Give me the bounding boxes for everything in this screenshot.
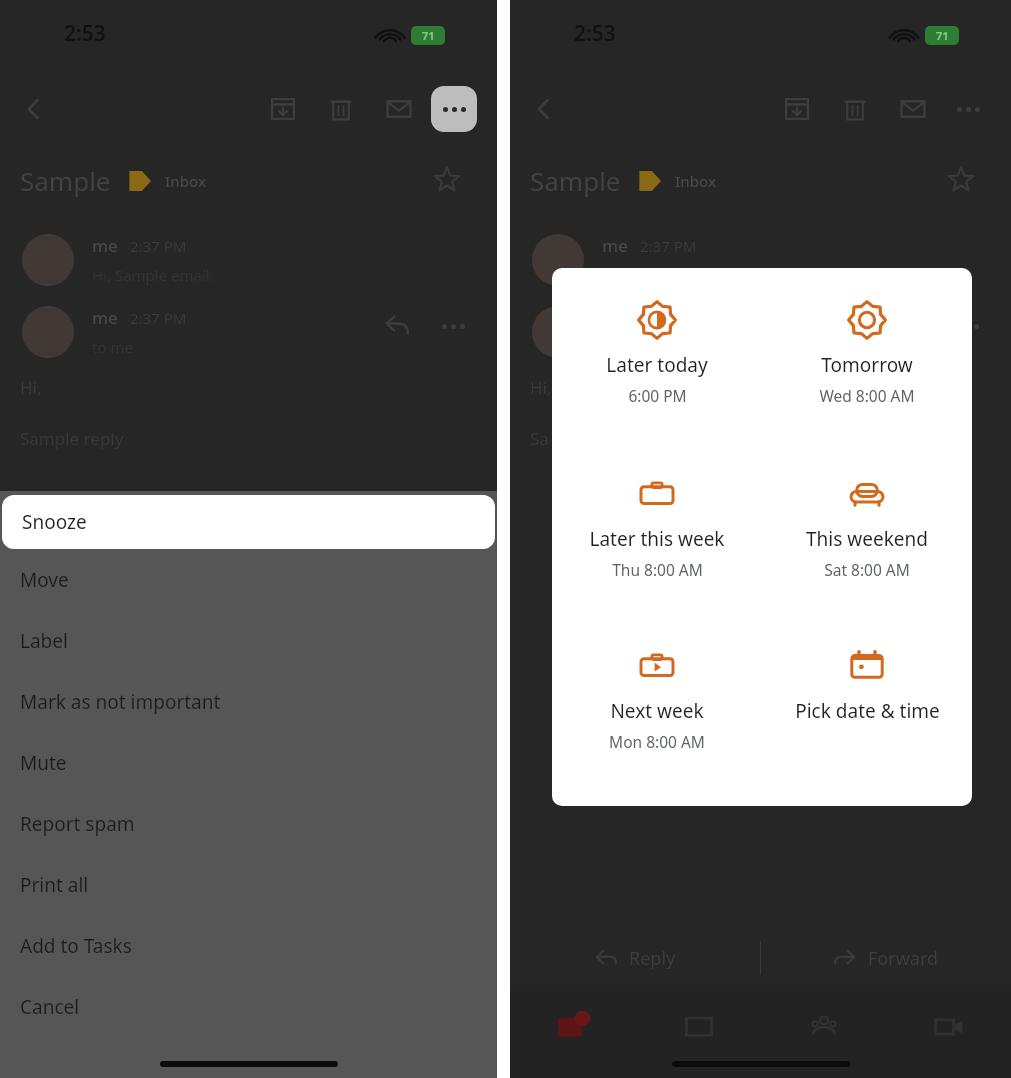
button[interactable]: Tomorrow xyxy=(762,296,972,410)
button[interactable]: Star xyxy=(427,160,467,200)
staticText: Move xyxy=(20,567,69,593)
button[interactable]: Print all xyxy=(0,854,497,915)
button[interactable]: Mark as not important xyxy=(0,671,497,732)
staticText: Later this week xyxy=(589,526,725,552)
staticText: Inbox xyxy=(165,171,207,191)
staticText: 2:53 xyxy=(574,19,616,48)
button[interactable]: Back xyxy=(520,85,568,133)
button[interactable]: Mark unread xyxy=(891,87,935,131)
staticText: Mark as not important xyxy=(20,689,221,715)
staticText: Cancel xyxy=(20,994,80,1020)
button[interactable]: Snooze xyxy=(2,495,495,549)
button[interactable]: Delete xyxy=(833,87,877,131)
button[interactable]: Back xyxy=(10,85,58,133)
staticText: 2:37 PM xyxy=(130,236,187,256)
button[interactable]: Label xyxy=(0,610,497,671)
button[interactable]: More xyxy=(433,306,473,346)
button[interactable]: Mail xyxy=(510,990,636,1078)
button[interactable]: Chat xyxy=(636,990,761,1078)
staticText: Snooze xyxy=(22,509,87,535)
staticText: 71 xyxy=(936,28,949,43)
button[interactable]: Archive xyxy=(261,87,305,131)
staticText: Sample xyxy=(530,163,621,198)
button[interactable]: More options xyxy=(431,86,477,132)
staticText: Tomorrow xyxy=(821,352,913,378)
staticText: Sample reply xyxy=(20,427,124,450)
staticText: me xyxy=(92,306,118,329)
button[interactable]: Spaces xyxy=(761,990,886,1078)
button[interactable]: Star xyxy=(941,160,981,200)
staticText: 71 xyxy=(422,28,435,43)
button[interactable]: Later this week xyxy=(552,470,762,584)
staticText: Inbox xyxy=(675,171,717,191)
staticText: This weekend xyxy=(806,526,928,552)
button[interactable]: Move xyxy=(0,549,497,610)
staticText: Wed 8:00 AM xyxy=(819,385,915,406)
staticText: Pick date & time xyxy=(795,698,940,724)
staticText: 2:37 PM xyxy=(130,308,187,328)
button[interactable]: Pick date & time xyxy=(762,642,972,728)
staticText: 2:37 PM xyxy=(640,236,697,256)
staticText: Hi, xyxy=(530,376,552,399)
staticText: Mute xyxy=(20,750,67,776)
button[interactable]: Mark unread xyxy=(377,87,421,131)
staticText: 6:00 PM xyxy=(628,385,687,406)
button[interactable]: Archive xyxy=(775,87,819,131)
button[interactable]: This weekend xyxy=(762,470,972,584)
staticText: Reply xyxy=(629,946,676,971)
staticText: Mon 8:00 AM xyxy=(609,731,705,752)
button[interactable]: Next week xyxy=(552,642,762,756)
staticText: Hi, xyxy=(20,376,42,399)
staticText: Add to Tasks xyxy=(20,933,132,959)
staticText: 2:37 PM xyxy=(640,308,697,328)
button[interactable]: Report spam xyxy=(0,793,497,854)
button[interactable]: More xyxy=(947,306,987,346)
button[interactable]: More options xyxy=(945,86,991,132)
button[interactable]: Mute xyxy=(0,732,497,793)
staticText: me xyxy=(602,234,628,257)
staticText: Next week xyxy=(610,698,704,724)
staticText: 2:53 xyxy=(64,19,106,48)
staticText: Print all xyxy=(20,872,89,898)
button[interactable]: Delete xyxy=(319,87,363,131)
button[interactable]: Reply xyxy=(377,306,417,346)
staticText: Thu 8:00 AM xyxy=(612,559,703,580)
staticText: Hi, Sample email. xyxy=(602,265,724,285)
staticText: Report spam xyxy=(20,811,135,837)
button[interactable]: Cancel xyxy=(0,976,497,1037)
staticText: Sa xyxy=(530,427,549,450)
staticText: Label xyxy=(20,628,68,654)
button[interactable]: Add to Tasks xyxy=(0,915,497,976)
button[interactable]: Later today xyxy=(552,296,762,410)
staticText: Hi, Sample email. xyxy=(92,265,214,285)
staticText: to me xyxy=(92,337,133,357)
staticText: Later today xyxy=(606,352,708,378)
staticText: Sat 8:00 AM xyxy=(824,559,910,580)
staticText: me xyxy=(92,234,118,257)
staticText: Sample xyxy=(20,163,111,198)
staticText: Forward xyxy=(868,946,939,971)
